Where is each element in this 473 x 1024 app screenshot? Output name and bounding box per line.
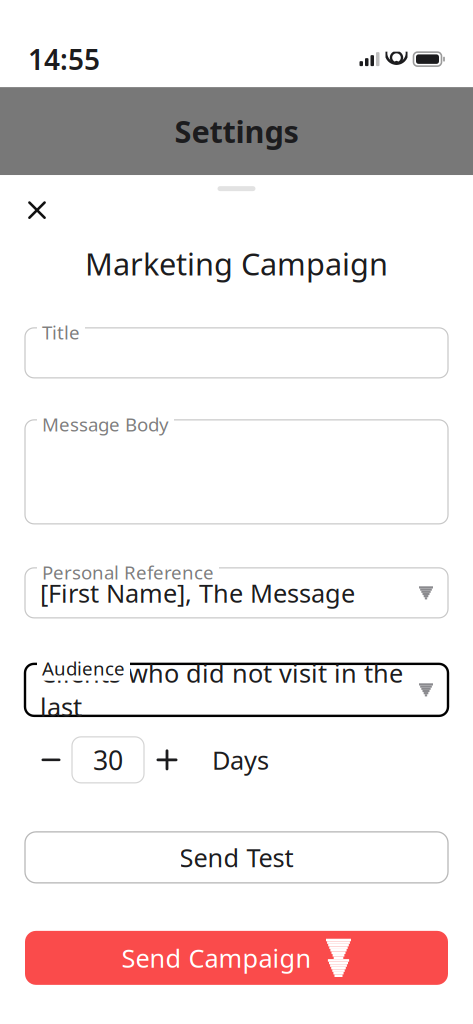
staticText: 14:55 <box>28 40 100 78</box>
button[interactable]: Close <box>17 193 57 227</box>
staticText: Title <box>42 320 80 345</box>
button[interactable]: 30 <box>72 737 144 783</box>
button[interactable]: [First Name], The Message <box>25 568 448 618</box>
staticText: Message Body <box>42 412 169 437</box>
staticText: Marketing Campaign <box>85 243 388 284</box>
staticText: [First Name], The Message <box>40 576 355 610</box>
staticText: Days <box>212 743 269 777</box>
staticText: 30 <box>93 742 123 778</box>
staticText: Clients who did not visit in the last <box>40 656 403 723</box>
button[interactable]: Send Test <box>25 832 448 883</box>
staticText: Audience <box>42 656 125 681</box>
staticText: Send Campaign <box>121 941 311 975</box>
button[interactable]: Decrease days <box>30 738 72 782</box>
staticText: Send Test <box>179 840 293 874</box>
button[interactable]: Increase days <box>144 738 190 782</box>
button[interactable]: Send Campaign <box>25 931 448 985</box>
staticText: Settings <box>174 111 298 151</box>
button[interactable]: Clients who did not visit in the last <box>25 664 448 716</box>
staticText: Personal Reference <box>42 560 214 585</box>
